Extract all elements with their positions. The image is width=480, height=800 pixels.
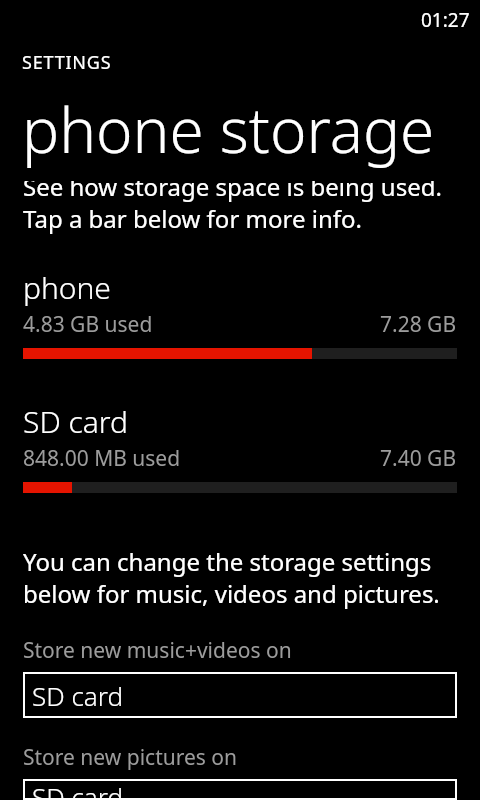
staticText: 848.00 MB used <box>23 444 181 473</box>
button[interactable]: SD card <box>23 401 457 493</box>
staticText: Store new music+videos on <box>23 636 292 665</box>
staticText: You can change the storage settings belo… <box>23 545 457 610</box>
staticText: 7.28 GB <box>380 310 457 339</box>
staticText: SD card <box>32 678 124 713</box>
staticText: SD card <box>23 401 129 442</box>
staticText: Store new pictures on <box>23 743 238 772</box>
staticText: 7.40 GB <box>380 444 457 473</box>
staticText: SD card <box>32 779 124 800</box>
staticText: SETTINGS <box>22 50 112 75</box>
button[interactable]: phone <box>23 267 457 359</box>
staticText: phone storage <box>22 87 435 171</box>
button[interactable]: SD card <box>23 672 457 718</box>
staticText: 01:27 <box>421 7 470 33</box>
button[interactable]: SD card <box>23 779 457 800</box>
staticText: See how storage space is being used. Tap… <box>23 170 457 235</box>
staticText: 4.83 GB used <box>23 310 153 339</box>
staticText: phone <box>23 267 111 308</box>
